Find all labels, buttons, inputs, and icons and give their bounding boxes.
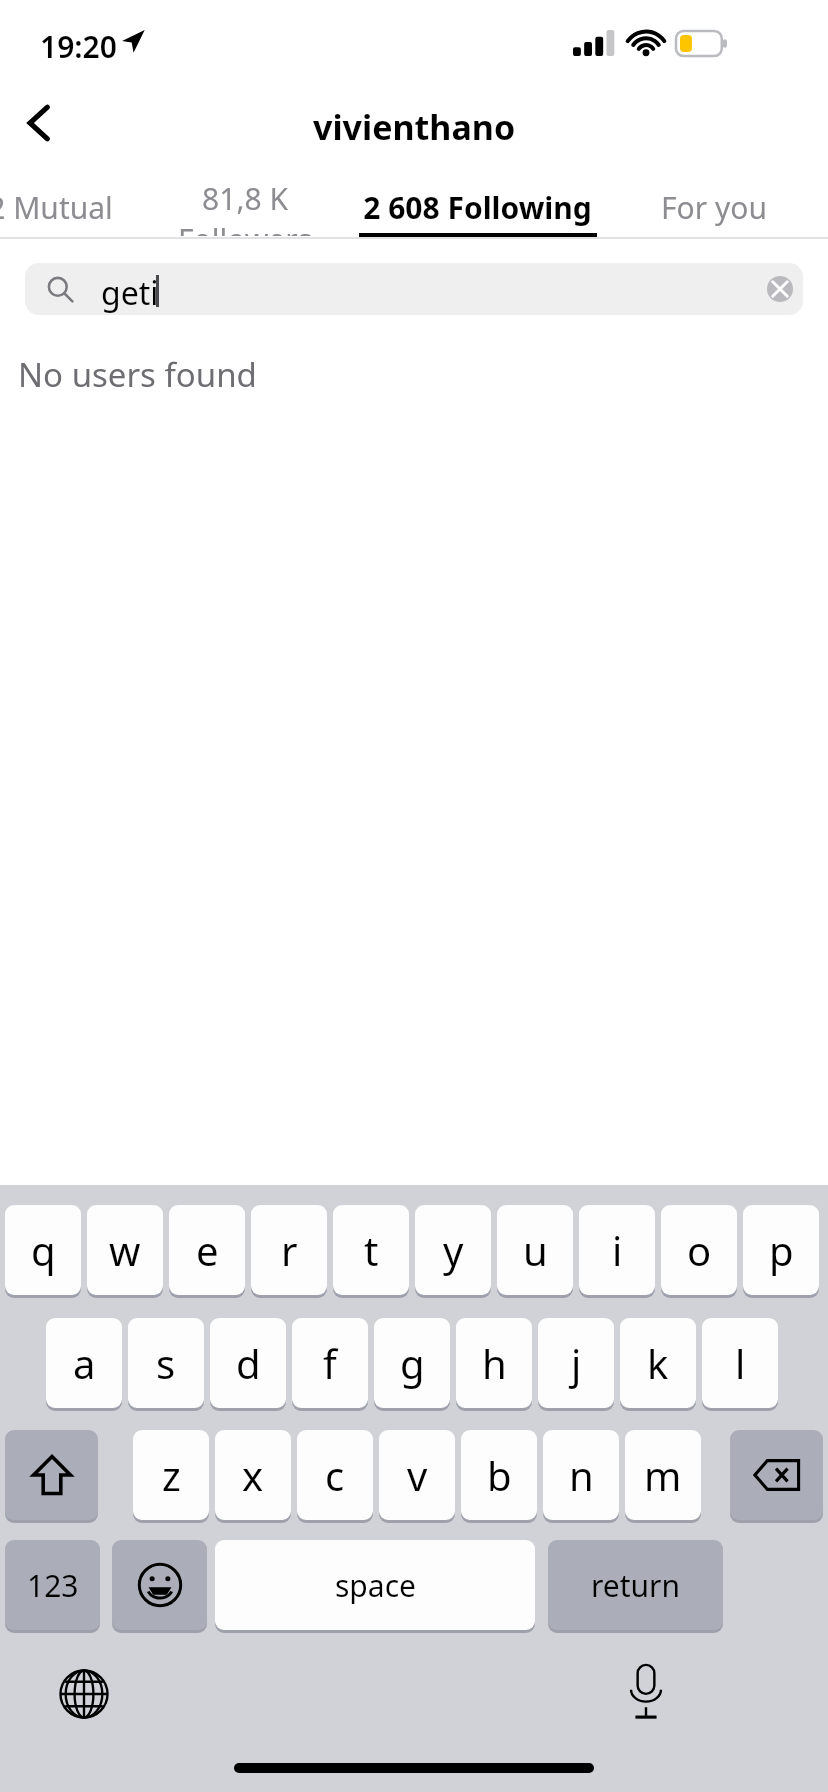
button[interactable]: Change keyboard language — [50, 1660, 118, 1728]
button[interactable]: 123 — [5, 1540, 100, 1630]
button[interactable]: p — [743, 1205, 819, 1295]
button[interactable]: g — [374, 1318, 450, 1408]
button[interactable]: b — [461, 1430, 537, 1520]
staticText: a — [73, 1336, 96, 1390]
staticText: r — [281, 1223, 298, 1277]
button[interactable]: m — [625, 1430, 701, 1520]
staticText: For you — [661, 187, 767, 228]
staticText: vivienthano — [313, 104, 516, 150]
button[interactable]: u — [497, 1205, 573, 1295]
button[interactable]: Emoji — [112, 1540, 207, 1630]
staticText: o — [687, 1223, 712, 1277]
button[interactable]: d — [210, 1318, 286, 1408]
staticText: geti — [101, 271, 159, 315]
staticText: c — [325, 1448, 345, 1502]
button[interactable]: w — [87, 1205, 163, 1295]
button[interactable]: Shift — [5, 1430, 98, 1520]
button[interactable]: z — [133, 1430, 209, 1520]
staticText: 2 608 Following — [363, 187, 592, 228]
staticText: space — [335, 1565, 416, 1606]
button[interactable]: Back — [8, 92, 70, 154]
button[interactable]: return — [548, 1540, 723, 1630]
staticText: x — [242, 1448, 264, 1502]
button[interactable]: x — [215, 1430, 291, 1520]
staticText: u — [523, 1223, 548, 1277]
staticText: m — [644, 1448, 682, 1502]
button[interactable]: e — [169, 1205, 245, 1295]
staticText: v — [407, 1448, 428, 1502]
staticText: n — [569, 1448, 594, 1502]
staticText: y — [443, 1223, 464, 1277]
staticText: j — [571, 1336, 582, 1390]
button[interactable]: k — [620, 1318, 696, 1408]
staticText: k — [647, 1336, 669, 1390]
staticText: return — [591, 1565, 681, 1606]
button[interactable]: r — [251, 1205, 327, 1295]
staticText: h — [482, 1336, 507, 1390]
staticText: t — [364, 1223, 379, 1277]
button[interactable]: geti — [25, 263, 803, 315]
button[interactable]: t — [333, 1205, 409, 1295]
staticText: 123 — [27, 1565, 79, 1606]
button[interactable]: For you — [616, 178, 812, 236]
button[interactable]: v — [379, 1430, 455, 1520]
button[interactable]: c — [297, 1430, 373, 1520]
button[interactable]: space — [215, 1540, 535, 1630]
button[interactable]: Clear text — [767, 276, 793, 302]
staticText: z — [162, 1448, 181, 1502]
staticText: l — [735, 1336, 746, 1390]
button[interactable]: Backspace — [730, 1430, 823, 1520]
staticText: b — [487, 1448, 512, 1502]
button[interactable]: j — [538, 1318, 614, 1408]
staticText: 81,8 K Followers — [148, 178, 342, 236]
staticText: q — [31, 1223, 56, 1277]
staticText: f — [323, 1336, 337, 1390]
button[interactable]: q — [5, 1205, 81, 1295]
button[interactable]: Dictation — [612, 1657, 680, 1725]
button[interactable]: 81,8 K Followers — [148, 178, 342, 236]
button[interactable]: h — [456, 1318, 532, 1408]
button[interactable]: n — [543, 1430, 619, 1520]
staticText: 2 Mutual — [0, 187, 113, 228]
staticText: s — [156, 1336, 176, 1390]
button[interactable]: l — [702, 1318, 778, 1408]
button[interactable]: 2 Mutual — [0, 178, 114, 236]
button[interactable]: a — [46, 1318, 122, 1408]
button[interactable]: s — [128, 1318, 204, 1408]
staticText: No users found — [18, 352, 257, 397]
button[interactable]: o — [661, 1205, 737, 1295]
staticText: w — [109, 1223, 141, 1277]
button[interactable]: f — [292, 1318, 368, 1408]
staticText: 19:20 — [40, 26, 117, 67]
button[interactable]: y — [415, 1205, 491, 1295]
button[interactable]: i — [579, 1205, 655, 1295]
staticText: d — [236, 1336, 261, 1390]
button[interactable]: 2 608 Following — [358, 178, 596, 236]
staticText: p — [769, 1223, 794, 1277]
staticText: g — [400, 1336, 425, 1390]
staticText: i — [612, 1223, 623, 1277]
staticText: e — [196, 1223, 219, 1277]
